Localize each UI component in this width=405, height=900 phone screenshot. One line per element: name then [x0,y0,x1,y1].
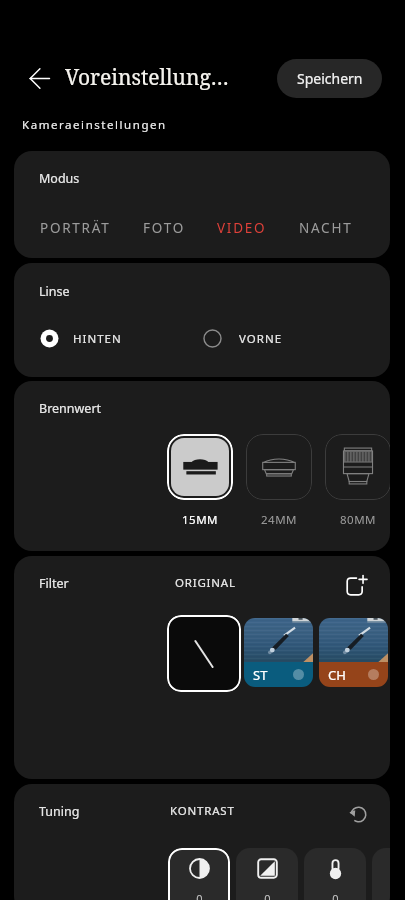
staticText: Tuning [39,803,80,820]
staticText: Modus [39,170,80,187]
staticText: VIDEO [217,219,267,237]
button[interactable]: CH [319,618,388,687]
button[interactable]: Reset [339,795,377,833]
staticText: ORIGINAL [175,575,236,591]
staticText: 80MM [340,512,377,528]
button[interactable]: Speichern [277,59,382,98]
button[interactable]: 24MM [246,434,312,528]
staticText: KONTRAST [170,803,235,819]
staticText: VORNE [239,331,283,347]
button[interactable]: HINTEN [34,323,128,354]
staticText: NACHT [299,219,353,237]
staticText: Filter [39,575,69,592]
staticText: ST [253,666,268,684]
staticText: Brennwert [39,400,102,417]
button[interactable]: ST [244,618,313,687]
staticText: 24MM [261,512,298,528]
button[interactable]: 15MM [167,434,233,528]
staticText: Voreinstellung… [65,63,229,92]
button[interactable]: Exposure [236,848,298,900]
staticText: 0 [332,891,339,900]
button[interactable]: Contrast [168,848,230,900]
button[interactable]: 80MM [325,434,390,528]
button[interactable]: Temperature [304,848,366,900]
staticText: 0 [264,891,271,900]
staticText: Speichern [297,69,363,88]
staticText: FOTO [143,219,185,237]
button[interactable]: Add filter [337,567,375,605]
button[interactable]: VIDEO [211,214,273,242]
staticText: 15MM [182,512,219,528]
button[interactable]: Back [18,57,60,99]
staticText: 0 [196,891,203,900]
button[interactable]: VORNE [197,323,289,354]
button[interactable]: FOTO [137,214,191,242]
staticText: HINTEN [73,331,122,347]
staticText: Linse [39,283,70,300]
staticText: PORTRÄT [40,219,111,237]
button[interactable]: NACHT [293,214,359,242]
button[interactable]: No filter [167,615,241,692]
staticText: CH [328,666,346,684]
button[interactable]: PORTRÄT [34,214,117,242]
staticText: Kameraeinstellungen [22,117,167,133]
